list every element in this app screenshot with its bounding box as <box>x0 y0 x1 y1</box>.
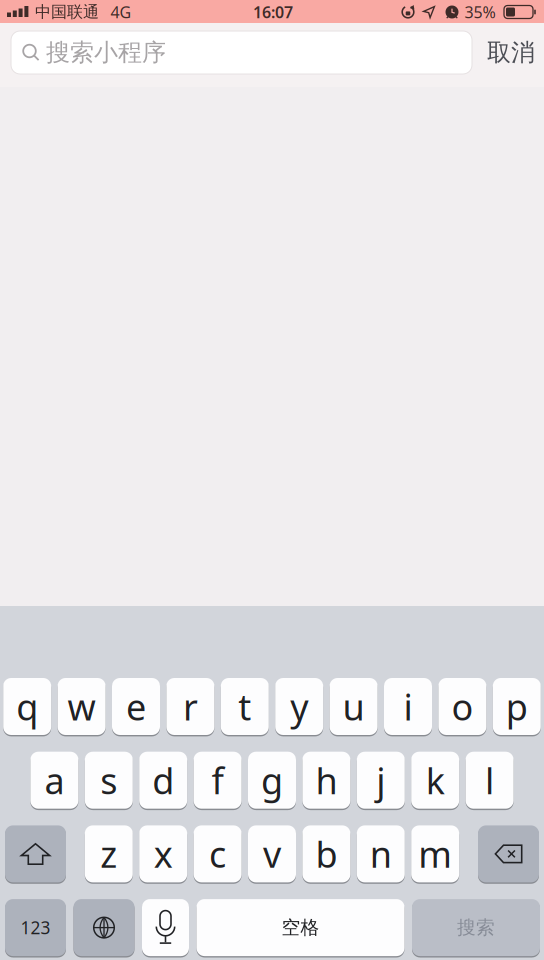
button[interactable]: q <box>3 678 51 735</box>
staticText: z <box>100 830 117 878</box>
staticText: 搜索小程序 <box>46 38 166 67</box>
staticText: m <box>418 830 452 878</box>
button[interactable]: p <box>493 678 541 735</box>
button[interactable]: a <box>30 752 78 809</box>
staticText: h <box>315 756 337 804</box>
staticText: q <box>16 683 38 730</box>
button[interactable]: c <box>194 825 242 882</box>
staticText: i <box>403 683 412 730</box>
staticText: r <box>183 683 198 730</box>
staticText: 取消 <box>487 38 535 67</box>
button[interactable]: n <box>357 825 405 882</box>
button[interactable]: r <box>166 678 214 735</box>
button[interactable]: g <box>248 752 296 809</box>
staticText: 16:07 <box>253 1 293 23</box>
staticText: g <box>261 756 283 804</box>
staticText: 搜索 <box>457 916 495 939</box>
button[interactable]: e <box>112 678 160 735</box>
button[interactable]: w <box>58 678 106 735</box>
staticText: n <box>370 830 392 878</box>
staticText: 中国联通 <box>35 2 99 22</box>
button[interactable]: Shift <box>5 825 66 882</box>
staticText: b <box>315 830 337 878</box>
button[interactable]: 123 <box>5 899 66 956</box>
staticText: p <box>506 683 528 730</box>
button[interactable]: v <box>248 825 296 882</box>
button[interactable]: u <box>330 678 378 735</box>
button[interactable]: 搜索 <box>412 899 540 956</box>
staticText: v <box>263 830 281 878</box>
button[interactable]: t <box>221 678 269 735</box>
staticText: c <box>209 830 226 878</box>
button[interactable]: s <box>85 752 133 809</box>
button[interactable]: o <box>438 678 486 735</box>
button[interactable]: l <box>466 752 514 809</box>
staticText: e <box>126 683 146 730</box>
staticText: o <box>451 683 473 730</box>
button[interactable]: i <box>384 678 432 735</box>
button[interactable]: z <box>85 825 133 882</box>
staticText: k <box>426 756 445 804</box>
button[interactable]: x <box>139 825 187 882</box>
button[interactable]: k <box>411 752 459 809</box>
staticText: s <box>100 756 117 804</box>
staticText: j <box>376 756 385 804</box>
staticText: 4G <box>110 1 131 23</box>
staticText: 123 <box>20 916 50 939</box>
button[interactable]: Next keyboard <box>73 899 134 956</box>
button[interactable]: Dictation <box>142 899 189 956</box>
button[interactable]: m <box>411 825 459 882</box>
button[interactable]: 搜索小程序 <box>11 31 472 74</box>
staticText: 空格 <box>281 916 319 939</box>
staticText: t <box>238 683 251 730</box>
staticText: d <box>152 756 174 804</box>
button[interactable]: d <box>139 752 187 809</box>
button[interactable]: 空格 <box>196 899 404 956</box>
staticText: u <box>343 683 365 730</box>
button[interactable]: 取消 <box>487 38 535 67</box>
button[interactable]: y <box>275 678 323 735</box>
staticText: a <box>44 756 64 804</box>
button[interactable]: b <box>302 825 350 882</box>
staticText: x <box>154 830 173 878</box>
staticText: y <box>290 683 308 730</box>
button[interactable]: Delete <box>478 825 539 882</box>
staticText: 35% <box>464 1 495 23</box>
button[interactable]: j <box>357 752 405 809</box>
staticText: l <box>485 756 494 804</box>
staticText: f <box>212 756 224 804</box>
staticText: w <box>68 683 96 730</box>
button[interactable]: h <box>302 752 350 809</box>
button[interactable]: f <box>194 752 242 809</box>
